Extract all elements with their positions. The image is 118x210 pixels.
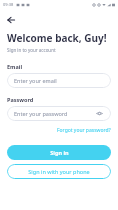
button[interactable]: Enter your email (7, 73, 111, 88)
staticText: Password (7, 96, 34, 103)
staticText: Forgot your password? (57, 127, 111, 134)
staticText: Email (7, 63, 23, 70)
button[interactable]: Sign in with your phone (7, 164, 111, 179)
button[interactable]: Enter your password (7, 106, 111, 121)
button[interactable]: Show password (95, 109, 104, 118)
staticText: Sign in with your phone (28, 168, 90, 175)
staticText: 09:38 (3, 2, 14, 7)
staticText: Enter your email (14, 77, 57, 84)
button[interactable]: Sign in (7, 145, 111, 160)
staticText: Welcome back, Guy! (7, 31, 107, 45)
staticText: Enter your password (14, 110, 68, 117)
button[interactable]: Back (4, 13, 18, 27)
staticText: Sign in to your account (7, 47, 56, 53)
button[interactable]: Forgot your password? (57, 126, 111, 135)
staticText: Sign in (50, 149, 69, 156)
